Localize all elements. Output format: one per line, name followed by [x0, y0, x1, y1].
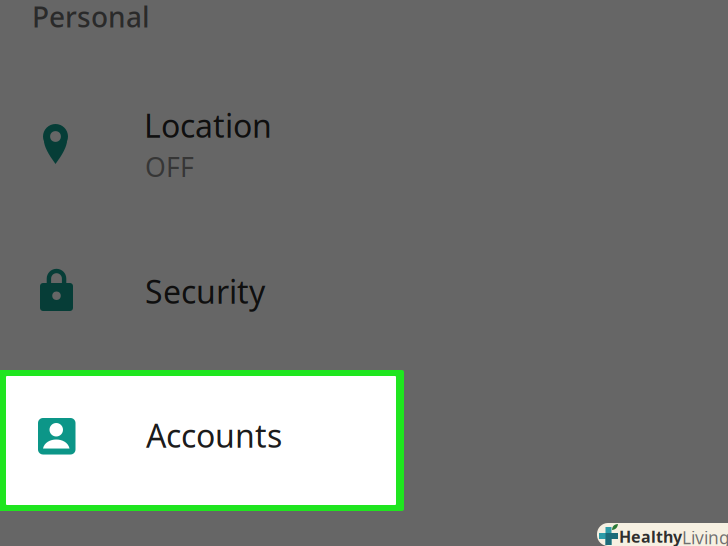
button[interactable]: Location — [0, 104, 728, 204]
staticText: Security — [145, 270, 265, 312]
staticText: Living — [682, 526, 728, 546]
staticText: Location — [144, 104, 272, 146]
staticText: Personal — [32, 0, 150, 35]
button[interactable]: Security — [0, 258, 728, 340]
staticText: Accounts — [146, 414, 282, 456]
staticText: Healthy — [619, 526, 682, 546]
staticText: OFF — [145, 149, 194, 184]
button[interactable]: Accounts — [0, 370, 404, 511]
